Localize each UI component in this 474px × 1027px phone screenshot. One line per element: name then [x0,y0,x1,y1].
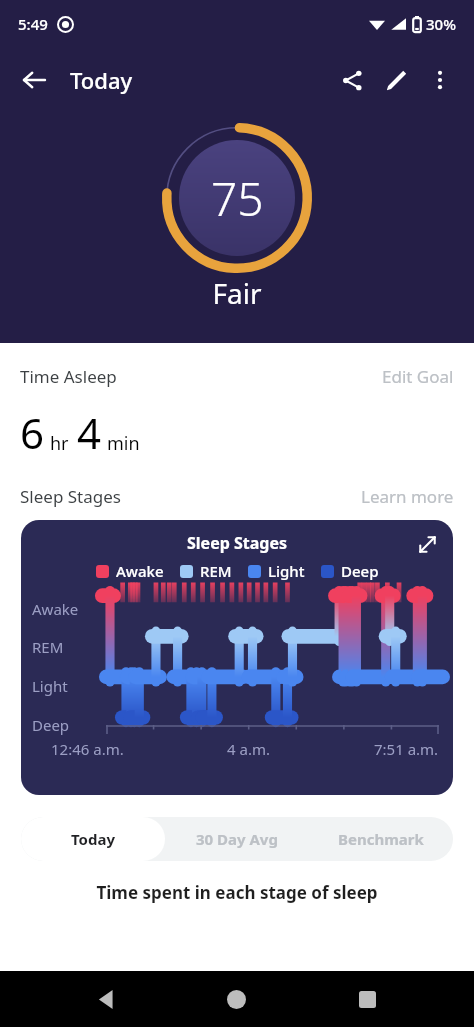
button[interactable]: Today [21,817,165,861]
staticText: Awake [32,599,79,619]
staticText: Time Asleep [20,365,117,388]
staticText: Benchmark [338,829,424,849]
staticText: 4 a.m. [227,739,270,759]
staticText: REM [32,637,64,657]
staticText: Deep [32,715,70,735]
staticText: Awake [116,561,164,581]
staticText: Edit Goal [382,365,454,388]
button[interactable]: Edit [374,58,418,102]
staticText: 6 [20,404,45,461]
staticText: 30 Day Avg [196,829,278,849]
button[interactable]: Sleep Stages [21,520,453,795]
staticText: Today [71,829,116,849]
staticText: 12:46 a.m. [51,739,124,759]
button[interactable]: Back [12,58,56,102]
staticText: Light [32,676,68,696]
staticText: Deep [341,561,379,581]
staticText: Sleep Stages [21,532,453,554]
staticText: 4 [77,404,102,461]
staticText: hr [50,431,69,456]
staticText: Sleep Stages [20,485,121,508]
button[interactable]: Home [212,975,260,1023]
staticText: 75 [211,167,264,230]
button[interactable]: More options [418,58,462,102]
button[interactable]: Back [82,975,130,1023]
staticText: 7:51 a.m. [374,739,439,759]
button[interactable]: 30 Day Avg [165,817,309,861]
staticText: REM [200,561,232,581]
staticText: Fair [212,274,262,312]
button[interactable]: Learn more [361,485,454,508]
button[interactable]: Edit Goal [382,365,454,388]
staticText: 5:49 [18,14,48,34]
button[interactable]: Benchmark [309,817,453,861]
staticText: Today [70,65,133,95]
staticText: Light [268,561,305,581]
staticText: min [107,431,140,456]
button[interactable]: Recent apps [343,975,391,1023]
button[interactable]: Share [330,58,374,102]
button[interactable]: Expand chart [409,526,445,562]
staticText: 30% [426,14,456,34]
staticText: Learn more [361,485,454,508]
staticText: Time spent in each stage of sleep [0,881,474,904]
